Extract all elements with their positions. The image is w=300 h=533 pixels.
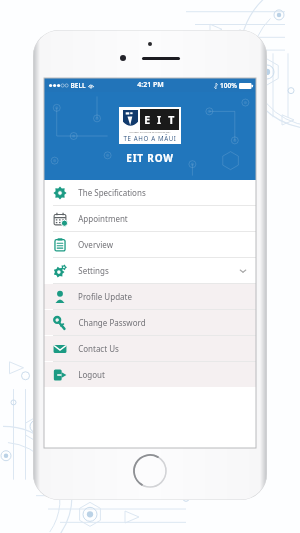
staticText: 100% (220, 81, 237, 90)
staticText: Settings (78, 265, 109, 276)
button[interactable]: The Specifications (44, 180, 256, 205)
button[interactable]: Home (133, 454, 167, 488)
staticText: EASTERN INSTITUTE OF TECHNOLOGY (129, 131, 171, 134)
staticText: 4:21 PM (137, 80, 164, 90)
staticText: EIT ROW (126, 151, 174, 165)
staticText: Appointment (78, 213, 128, 224)
staticText: E I T (144, 113, 175, 127)
button[interactable]: Settings (44, 258, 256, 283)
button[interactable]: Appointment (44, 206, 256, 231)
staticText: BELL (70, 81, 86, 90)
button[interactable]: Profile Update (44, 284, 256, 309)
button[interactable]: Logout (44, 362, 256, 387)
staticText: Contact Us (78, 343, 119, 354)
button[interactable]: Change Password (44, 310, 256, 335)
button[interactable]: Overview (44, 232, 256, 257)
staticText: TE AHO A MĀUI (123, 134, 177, 142)
staticText: The Specifications (78, 187, 146, 198)
staticText: Change Password (78, 317, 146, 328)
staticText: Overview (78, 239, 113, 250)
button[interactable]: Contact Us (44, 336, 256, 361)
staticText: Profile Update (78, 291, 132, 302)
staticText: Logout (78, 369, 105, 380)
